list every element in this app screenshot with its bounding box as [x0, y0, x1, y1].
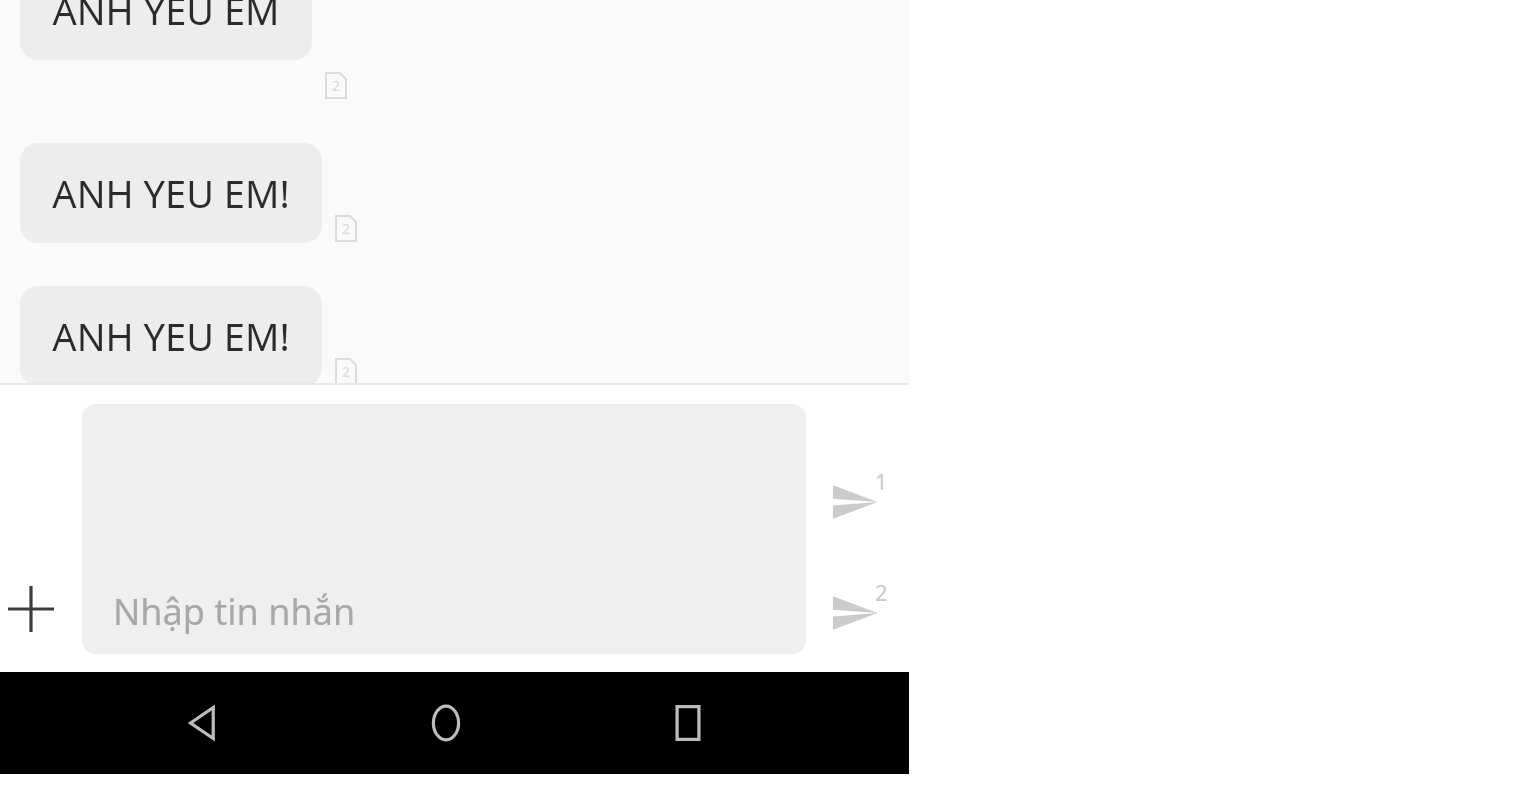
- staticText: Nhập tin nhắn: [113, 587, 356, 636]
- button[interactable]: Send with SIM 1: [828, 468, 890, 530]
- button[interactable]: ANH YEU EM!: [20, 286, 322, 383]
- button[interactable]: Back: [167, 686, 241, 760]
- staticText: ANH YEU EM: [52, 0, 280, 36]
- staticText: ANH YEU EM!: [52, 310, 290, 362]
- staticText: 2: [342, 362, 351, 381]
- button[interactable]: Nhập tin nhắn: [82, 404, 806, 654]
- button[interactable]: Home: [409, 686, 483, 760]
- button[interactable]: ANH YEU EM!: [20, 143, 322, 243]
- button[interactable]: Recent apps: [651, 686, 725, 760]
- staticText: 2: [875, 577, 888, 607]
- staticText: 2: [332, 76, 341, 95]
- button[interactable]: Send with SIM 2: [828, 579, 890, 641]
- staticText: ANH YEU EM!: [52, 167, 290, 219]
- staticText: 1: [875, 466, 888, 496]
- staticText: 2: [342, 219, 351, 238]
- button[interactable]: ANH YEU EM: [20, 0, 312, 60]
- button[interactable]: Add attachment: [2, 580, 60, 638]
